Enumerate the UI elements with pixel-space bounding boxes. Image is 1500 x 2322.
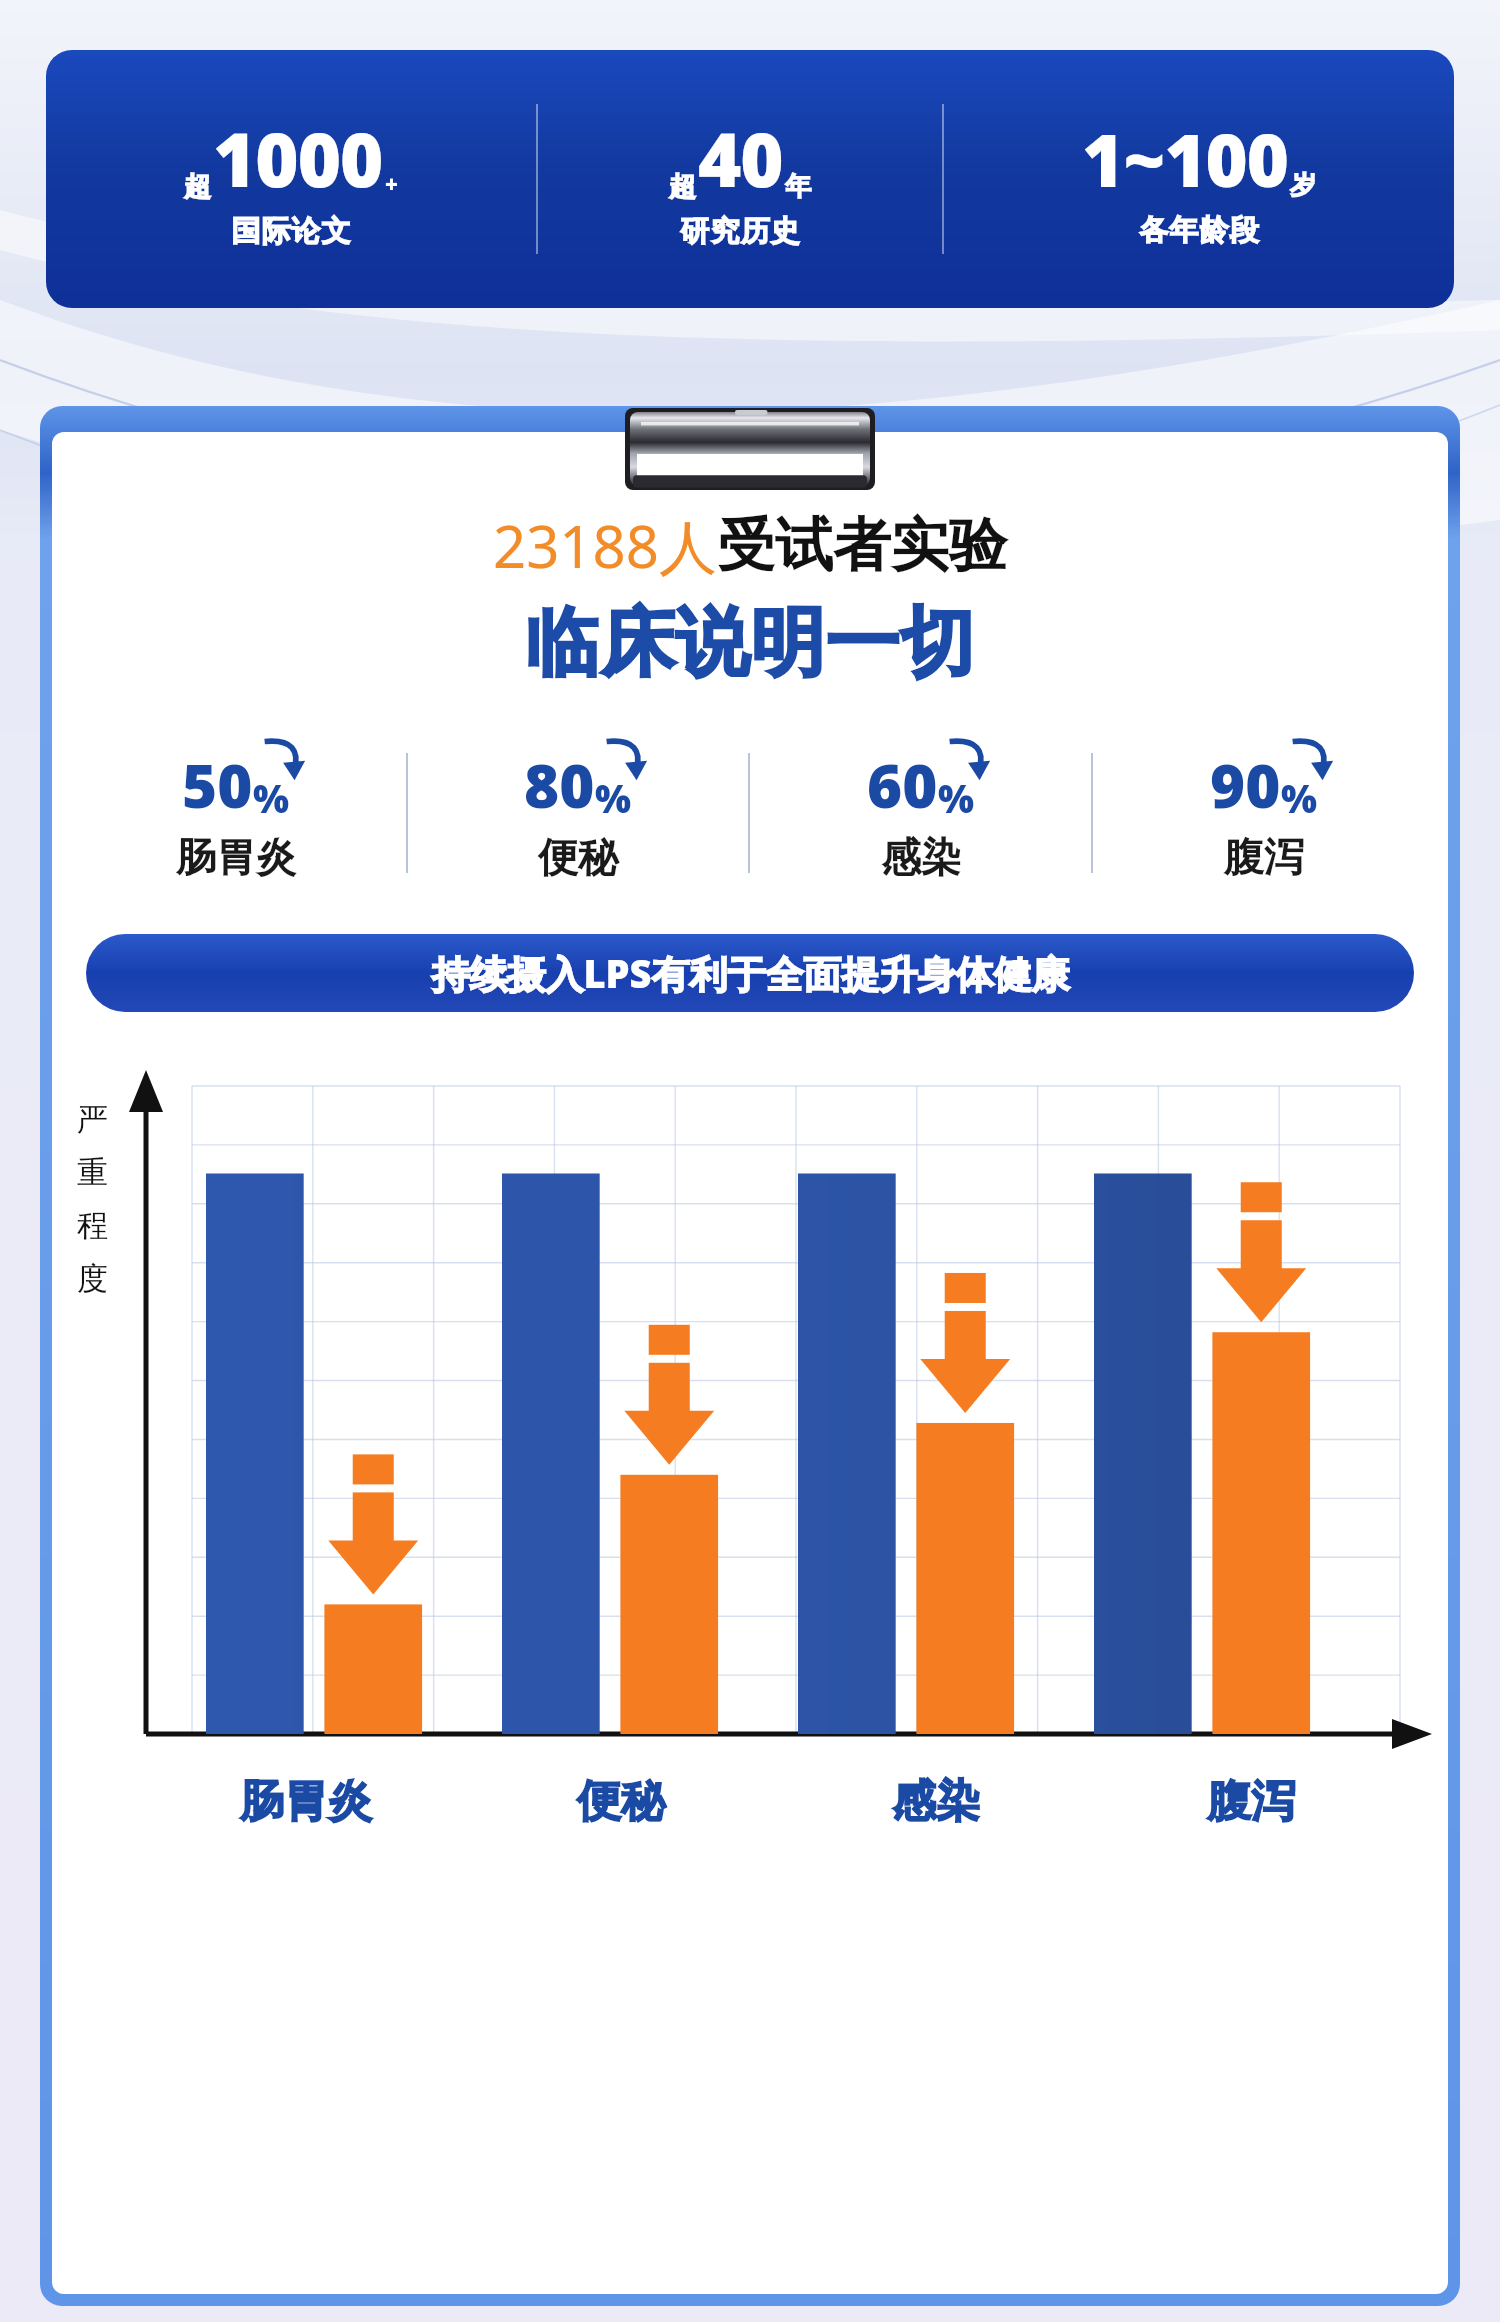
- staticText: 23188人: [493, 506, 717, 585]
- staticText: 便秘: [538, 832, 618, 882]
- staticText: 便秘: [577, 1774, 665, 1829]
- staticText: %: [595, 772, 632, 824]
- staticText: 年: [785, 170, 811, 203]
- other: Decrease: [262, 736, 306, 782]
- staticText: 80: [524, 744, 595, 826]
- other: Decrease: [1290, 736, 1334, 782]
- staticText: 1000: [213, 108, 383, 209]
- button[interactable]: 90: [1093, 744, 1434, 882]
- staticText: 各年龄段: [1139, 212, 1259, 249]
- staticText: 岁: [1290, 169, 1316, 202]
- button[interactable]: 80: [408, 744, 748, 882]
- staticText: 持续摄入LPS有利于全面提升身体健康: [431, 947, 1070, 999]
- staticText: 临床说明一切: [525, 597, 975, 690]
- staticText: 感染: [892, 1774, 980, 1829]
- staticText: 感染: [881, 832, 961, 882]
- staticText: 1~100: [1082, 110, 1288, 208]
- button[interactable]: 持续摄入LPS有利于全面提升身体健康: [86, 934, 1414, 1012]
- other: Decrease: [604, 736, 648, 782]
- staticText: 40: [698, 108, 783, 209]
- staticText: 超: [184, 170, 211, 204]
- staticText: 肠胃炎: [176, 832, 296, 882]
- other: Decrease: [947, 736, 991, 782]
- staticText: 度: [77, 1259, 108, 1298]
- staticText: +: [385, 169, 398, 199]
- staticText: %: [1281, 772, 1318, 824]
- button[interactable]: 50: [66, 744, 406, 882]
- staticText: 肠胃炎: [240, 1774, 372, 1829]
- staticText: 腹泻: [1224, 832, 1304, 882]
- staticText: 国际论文: [231, 213, 351, 250]
- button[interactable]: 超: [46, 50, 1454, 308]
- staticText: 90: [1210, 744, 1281, 826]
- staticText: 受试者实验: [717, 509, 1007, 582]
- staticText: 60: [867, 744, 938, 826]
- button[interactable]: 60: [750, 744, 1091, 882]
- staticText: 腹泻: [1207, 1774, 1295, 1829]
- staticText: 超: [669, 170, 696, 204]
- staticText: %: [253, 772, 290, 824]
- staticText: 程: [77, 1206, 108, 1245]
- staticText: 重: [77, 1153, 108, 1192]
- staticText: 严: [77, 1100, 108, 1139]
- staticText: 研究历史: [680, 213, 800, 250]
- staticText: 50: [182, 744, 253, 826]
- staticText: %: [938, 772, 975, 824]
